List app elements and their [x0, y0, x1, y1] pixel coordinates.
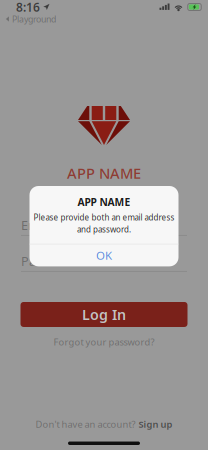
staticText: Don't have an account? — [35, 418, 135, 430]
button[interactable]: Log In — [20, 302, 187, 327]
staticText: Log In — [82, 305, 126, 324]
staticText: APP NAME — [67, 163, 141, 183]
button[interactable]: Sign up — [138, 418, 172, 430]
staticText: and password. — [77, 224, 131, 235]
staticText: Sign up — [138, 418, 172, 430]
staticText: 8:16 — [16, 0, 40, 15]
button[interactable]: Forgot your password? — [20, 336, 187, 348]
button[interactable]: OK — [29, 244, 178, 266]
staticText: Email — [21, 216, 53, 234]
staticText: APP NAME — [77, 195, 130, 209]
staticText: Playground — [12, 13, 56, 25]
staticText: OK — [96, 248, 112, 263]
staticText: Password — [21, 252, 79, 270]
staticText: Forgot your password? — [53, 336, 154, 348]
staticText: Please provide both an email address — [33, 212, 174, 223]
